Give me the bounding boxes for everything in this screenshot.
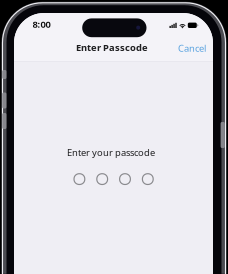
staticText: Cancel [178,42,206,54]
staticText: Enter your passcode [67,146,155,158]
button[interactable]: Cancel [173,37,211,59]
staticText: 8:00 [32,18,50,30]
staticText: Enter Passcode [76,41,148,54]
